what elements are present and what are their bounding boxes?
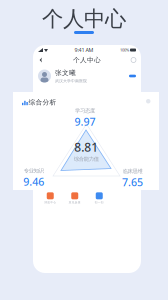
staticText: 我的任务 [93,174,105,178]
staticText: 综合能力值 [74,156,99,162]
staticText: 个人中心 [42,6,126,32]
staticText: 7.65 [122,175,143,189]
button[interactable]: 张文曦 [33,65,141,87]
button[interactable]: Info [146,99,150,103]
staticText: 我的申请 [44,174,56,178]
button[interactable]: Back [37,55,44,64]
staticText: 学习态度 [75,107,95,114]
button[interactable]: 意见反馈 [62,192,87,204]
staticText: 9.97 [74,115,95,129]
staticText: 临床思维 [122,168,142,175]
button[interactable]: More [130,55,137,64]
staticText: 消息中心 [44,201,56,204]
button[interactable]: 我的申请 [38,166,62,178]
staticText: OA办公系统的日常业务审批等 [57,159,97,163]
staticText: 待办业务 [118,174,130,178]
staticText: 个人中心 [73,56,101,64]
staticText: 服务与工具 [38,183,63,189]
staticText: 综合分析 [28,98,56,106]
button[interactable]: 消息中心 [38,192,62,204]
button[interactable]: 申请审批 [62,166,87,178]
staticText: 武汉大学中南医院 [55,78,87,83]
staticText: 张文曦 [55,69,76,77]
staticText: 专业知识 [24,167,44,174]
staticText: 100% [120,47,129,53]
button[interactable]: 我的任务 [87,166,111,178]
staticText: 9.46 [23,175,44,189]
button[interactable]: 扫一扫 [87,192,111,204]
staticText: 申请审批 [69,174,81,178]
button[interactable]: 待办业务 [111,166,136,178]
staticText: 意见反馈 [69,201,81,204]
staticText: 扫一扫 [95,201,104,204]
staticText: 8.81 [74,139,98,155]
staticText: 9:41 AM [74,46,93,54]
